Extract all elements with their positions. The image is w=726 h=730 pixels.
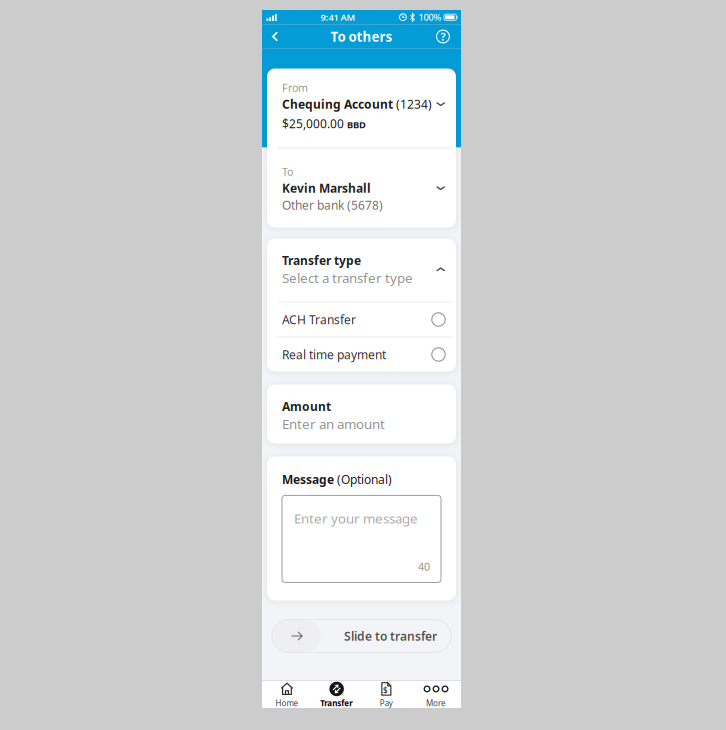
button[interactable]: From xyxy=(267,68,456,147)
staticText: 9:41 AM xyxy=(320,11,355,23)
staticText: Enter an amount xyxy=(282,415,385,433)
staticText: Message (Optional) xyxy=(282,471,392,487)
staticText: 40 xyxy=(418,559,430,574)
staticText: Home xyxy=(275,698,298,708)
button[interactable]: Slide to transfer xyxy=(272,619,451,652)
staticText: Pay xyxy=(380,698,393,708)
staticText: From xyxy=(282,80,308,95)
staticText: $25,000.00 BBD xyxy=(282,116,366,131)
staticText: ACH Transfer xyxy=(282,311,356,327)
staticText: Transfer type xyxy=(282,252,361,268)
button[interactable]: Transfer type xyxy=(267,238,456,301)
staticText: Enter your message xyxy=(294,509,418,527)
staticText: Select a transfer type xyxy=(282,269,413,287)
staticText: Transfer xyxy=(320,698,353,708)
staticText: Other bank (5678) xyxy=(282,197,383,213)
staticText: ? xyxy=(440,29,445,44)
button[interactable]: Real time payment xyxy=(267,337,456,371)
button[interactable]: Back xyxy=(262,26,279,46)
button[interactable]: Transfer xyxy=(312,680,361,708)
button[interactable]: Amount xyxy=(267,384,456,443)
staticText: 100% xyxy=(418,11,441,23)
staticText: Kevin Marshall xyxy=(282,180,371,196)
button[interactable]: More xyxy=(411,680,461,708)
staticText: To others xyxy=(330,28,392,45)
button[interactable]: Pay xyxy=(361,680,411,708)
staticText: Slide to transfer xyxy=(344,628,437,644)
button[interactable]: Enter your message xyxy=(282,487,441,582)
button[interactable]: Home xyxy=(262,680,312,708)
staticText: Chequing Account (1234) xyxy=(282,96,432,112)
staticText: Real time payment xyxy=(282,346,386,362)
button[interactable]: To xyxy=(267,148,456,227)
staticText: More xyxy=(426,698,446,708)
staticText: Amount xyxy=(282,398,331,414)
staticText: $ xyxy=(383,685,388,695)
staticText: To xyxy=(282,164,293,179)
button[interactable]: Help xyxy=(436,26,461,47)
button[interactable]: ACH Transfer xyxy=(267,302,456,336)
